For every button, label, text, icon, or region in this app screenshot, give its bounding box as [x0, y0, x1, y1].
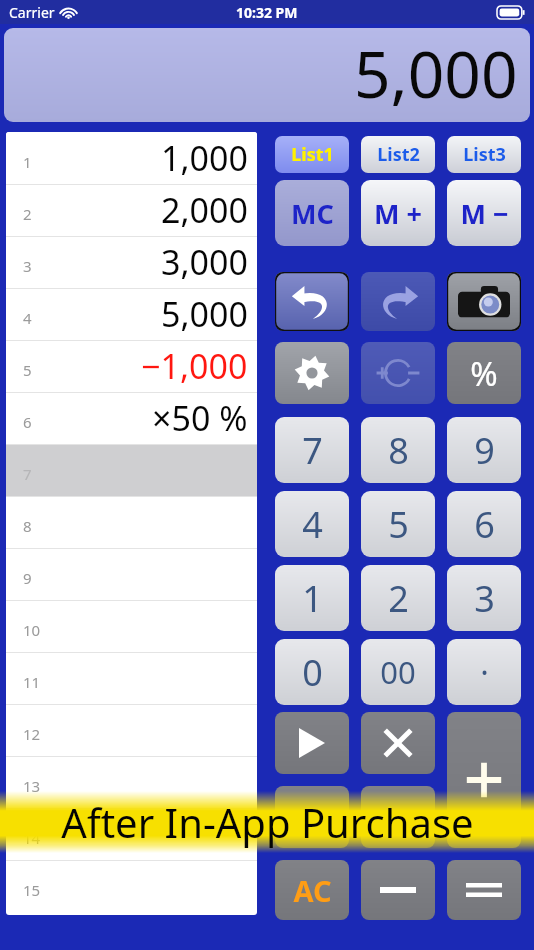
button[interactable]: 7: [6, 444, 257, 496]
button[interactable]: Settings: [275, 342, 349, 404]
staticText: 7: [302, 426, 323, 475]
button[interactable]: List2: [361, 136, 435, 173]
button[interactable]: 4: [6, 288, 257, 340]
button[interactable]: Undo: [275, 272, 349, 331]
staticText: 3: [474, 574, 495, 623]
staticText: ×50 %: [152, 395, 248, 441]
button[interactable]: Key: [361, 786, 435, 848]
staticText: 8: [388, 426, 409, 475]
button[interactable]: List1: [275, 136, 349, 173]
staticText: 13: [23, 776, 41, 796]
button[interactable]: 14: [6, 808, 257, 860]
button[interactable]: Plus: [447, 712, 521, 848]
staticText: 8: [23, 516, 32, 536]
staticText: 1,000: [161, 135, 248, 181]
staticText: 1: [302, 574, 323, 623]
staticText: List1: [291, 142, 334, 167]
button[interactable]: ·: [447, 639, 521, 705]
button[interactable]: List3: [447, 136, 521, 173]
button[interactable]: 1: [6, 132, 257, 184]
button[interactable]: Key: [275, 786, 349, 848]
button[interactable]: 9: [447, 417, 521, 483]
button[interactable]: AC: [275, 860, 349, 920]
staticText: 2,000: [161, 187, 248, 233]
staticText: 15: [23, 880, 41, 900]
button[interactable]: 5: [6, 340, 257, 392]
button[interactable]: 9: [6, 548, 257, 600]
staticText: 11: [23, 672, 41, 692]
button[interactable]: 12: [6, 704, 257, 756]
button[interactable]: Minus: [361, 860, 435, 920]
button[interactable]: 7: [275, 417, 349, 483]
staticText: AC: [293, 871, 332, 910]
staticText: %: [470, 351, 498, 396]
button[interactable]: 00: [361, 639, 435, 705]
button[interactable]: Equals: [447, 860, 521, 920]
button[interactable]: 6: [447, 491, 521, 557]
staticText: 2: [23, 204, 32, 224]
staticText: −1,000: [141, 343, 248, 389]
staticText: List2: [377, 142, 420, 167]
button[interactable]: Toggle sign: [361, 342, 435, 404]
button[interactable]: 6: [6, 392, 257, 444]
staticText: 9: [23, 568, 32, 588]
staticText: 5: [23, 360, 32, 380]
button[interactable]: 3: [6, 236, 257, 288]
staticText: 4: [302, 500, 323, 549]
button[interactable]: 5,000: [4, 28, 530, 122]
staticText: 10:32 PM: [236, 3, 298, 22]
staticText: After In-App Purchase: [61, 795, 474, 849]
staticText: 1: [23, 152, 32, 172]
staticText: List3: [463, 142, 506, 167]
staticText: M +: [374, 195, 422, 232]
staticText: 12: [23, 724, 41, 744]
button[interactable]: 4: [275, 491, 349, 557]
staticText: 7: [23, 464, 32, 484]
button[interactable]: M −: [447, 180, 521, 246]
button[interactable]: MC: [275, 180, 349, 246]
button[interactable]: 2: [6, 184, 257, 236]
button[interactable]: 15: [6, 860, 257, 912]
button[interactable]: 8: [6, 496, 257, 548]
staticText: 0: [302, 648, 323, 697]
button[interactable]: 11: [6, 652, 257, 704]
staticText: Carrier: [9, 3, 55, 22]
button[interactable]: %: [447, 342, 521, 404]
staticText: 3: [23, 256, 32, 276]
staticText: M −: [460, 195, 509, 232]
button[interactable]: 5: [361, 491, 435, 557]
staticText: 14: [23, 828, 41, 848]
staticText: 5,000: [354, 30, 518, 117]
button[interactable]: 2: [361, 565, 435, 631]
button[interactable]: 10: [6, 600, 257, 652]
staticText: 5,000: [161, 291, 248, 337]
staticText: ·: [480, 650, 489, 694]
staticText: 4: [23, 308, 32, 328]
button[interactable]: 3: [447, 565, 521, 631]
button[interactable]: 0: [275, 639, 349, 705]
staticText: 3,000: [161, 239, 248, 285]
staticText: MC: [291, 195, 334, 232]
button[interactable]: M +: [361, 180, 435, 246]
button[interactable]: Multiply: [361, 712, 435, 774]
button[interactable]: 1: [275, 565, 349, 631]
staticText: 2: [388, 574, 409, 623]
staticText: 00: [380, 651, 416, 693]
staticText: 6: [23, 412, 32, 432]
button[interactable]: Redo: [361, 272, 435, 331]
staticText: 9: [474, 426, 495, 475]
button[interactable]: Camera: [447, 272, 521, 331]
staticText: 5: [388, 500, 409, 549]
button[interactable]: Run: [275, 712, 349, 774]
button[interactable]: 13: [6, 756, 257, 808]
staticText: 10: [23, 620, 41, 640]
button[interactable]: 8: [361, 417, 435, 483]
staticText: 6: [474, 500, 495, 549]
